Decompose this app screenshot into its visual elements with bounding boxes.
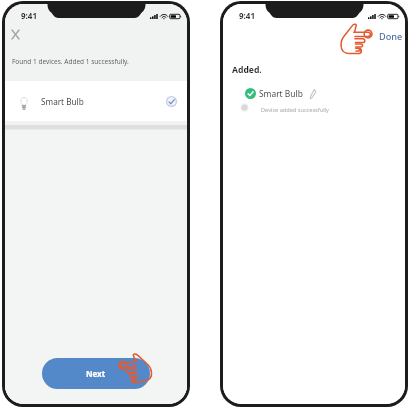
other: Tap Done — [339, 23, 376, 57]
button[interactable]: Next — [42, 358, 150, 389]
staticText: Found 1 devices. Added 1 successfully. — [12, 57, 129, 66]
button[interactable]: Close — [6, 24, 24, 44]
button[interactable]: Added — [162, 92, 180, 110]
staticText: Smart Bulb — [259, 88, 303, 99]
staticText: 9:41 — [21, 10, 37, 21]
staticText: 9:41 — [239, 10, 255, 21]
button[interactable]: Smart Bulb — [245, 88, 318, 99]
staticText: Added. — [232, 64, 262, 76]
button[interactable]: Done — [379, 30, 403, 43]
staticText: Smart Bulb — [41, 96, 84, 107]
staticText: Done — [379, 30, 403, 43]
button[interactable]: Edit name — [307, 88, 318, 99]
other: Tap — [115, 353, 153, 386]
staticText: Next — [86, 368, 106, 379]
button[interactable]: Smart Bulb — [5, 81, 187, 121]
staticText: Device added successfully — [261, 106, 329, 114]
